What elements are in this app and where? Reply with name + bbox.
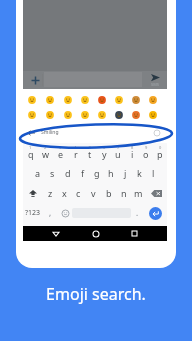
staticText: k [137,167,142,179]
staticText: x [62,187,67,199]
button[interactable]: h [104,163,118,183]
button[interactable]: j [118,163,132,183]
button[interactable]: Emoji [93,107,110,122]
staticText: v [91,187,96,199]
staticText: s [50,167,55,179]
staticText: q [28,148,34,160]
staticText: 4 [74,145,77,150]
staticText: g [94,167,100,179]
button[interactable]: Send [143,71,167,89]
staticText: e [58,148,64,160]
button[interactable]: s [45,163,60,183]
button[interactable]: Emoji [41,107,59,122]
staticText: w [42,148,50,160]
staticText: h [108,167,114,179]
staticText: SMS [151,82,160,87]
staticText: 0 [159,145,162,150]
button[interactable]: Smiling [23,122,167,143]
button[interactable]: x [57,183,71,203]
button[interactable]: 0 [153,143,167,163]
button[interactable]: Recent apps [127,226,142,241]
staticText: l [152,167,155,179]
button[interactable]: 3 [53,143,68,163]
button[interactable]: Emoji [110,92,127,107]
button[interactable]: 5 [83,143,97,163]
staticText: . [136,207,139,218]
staticText: r [74,148,78,160]
button[interactable]: Emoji [59,107,76,122]
button[interactable]: 8 [125,143,139,163]
staticText: d [65,167,71,179]
button[interactable]: , [42,203,58,223]
staticText: 8 [131,145,134,150]
staticText: n [121,187,127,199]
staticText: a [35,167,41,179]
button[interactable]: Home [88,226,103,241]
button[interactable]: f [75,163,90,183]
staticText: 7 [117,145,120,150]
button[interactable]: z [43,183,57,203]
button[interactable]: v [86,183,101,203]
staticText: t [88,148,92,160]
button[interactable]: Emoji [127,107,144,122]
staticText: f [81,167,85,179]
button[interactable]: Emoji [127,92,144,107]
button[interactable]: 7 [111,143,125,163]
staticText: j [124,167,127,179]
staticText: u [115,148,121,160]
staticText: 5 [89,145,92,150]
button[interactable]: Emoji [23,92,41,107]
staticText: ?123 [25,208,41,218]
staticText: o [143,148,149,160]
button[interactable]: 6 [97,143,111,163]
button[interactable]: l [146,163,160,183]
staticText: p [157,148,163,160]
button[interactable]: g [90,163,104,183]
button[interactable]: b [101,183,116,203]
button[interactable]: Shift [23,183,43,203]
button[interactable]: m [131,183,146,203]
staticText: 2 [44,145,47,150]
button[interactable]: Emoji [76,107,93,122]
button[interactable]: 1 [23,143,38,163]
button[interactable]: Enter [149,207,162,220]
button[interactable]: a [30,163,45,183]
staticText: i [131,148,134,160]
button[interactable]: Emoji [144,92,161,107]
staticText: 9 [145,145,148,150]
button[interactable]: n [116,183,131,203]
staticText: c [76,187,81,199]
staticText: 3 [59,145,62,150]
button[interactable]: c [71,183,86,203]
button[interactable]: . [131,203,144,223]
button[interactable]: Emoji keyboard [58,203,72,223]
staticText: z [48,187,53,199]
staticText: 1 [29,145,32,150]
button[interactable]: 9 [139,143,153,163]
staticText: 6 [103,145,106,150]
button[interactable]: Emoji [59,92,76,107]
button[interactable]: Add attachment [26,71,44,89]
staticText: Smiling [41,129,59,136]
button[interactable]: Emoji [93,92,110,107]
button[interactable]: Emoji [23,107,41,122]
staticText: y [102,148,107,160]
button[interactable]: Emoji [76,92,93,107]
button[interactable]: ?123 [23,203,42,223]
button[interactable]: Backspace [146,183,167,203]
button[interactable]: k [132,163,146,183]
button[interactable]: Emoji [144,107,161,122]
button[interactable]: d [60,163,75,183]
button[interactable]: Emoji [41,92,59,107]
button[interactable]: Back [48,226,63,241]
button[interactable]: 2 [38,143,53,163]
staticText: Emoji search. [0,283,192,305]
staticText: , [49,207,52,218]
button[interactable]: Emoji [110,107,127,122]
staticText: m [134,187,143,199]
staticText: b [106,187,112,199]
button[interactable]: 4 [68,143,83,163]
